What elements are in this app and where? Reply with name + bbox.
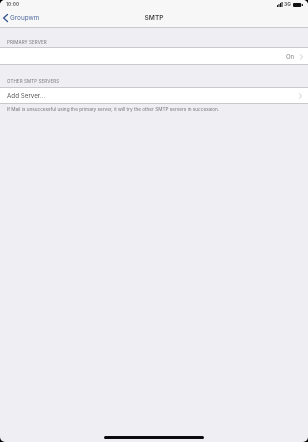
button[interactable]: On (0, 48, 308, 65)
button[interactable]: Groupwm (2, 13, 41, 23)
staticText: SMTP (0, 14, 308, 22)
staticText: If Mail is unsuccessful using the primar… (7, 106, 220, 112)
other: Open (299, 93, 302, 99)
staticText: 10:00 (6, 1, 20, 7)
staticText: OTHER SMTP SERVERS (7, 79, 60, 84)
staticText: On (286, 53, 295, 60)
staticText: 3G (284, 1, 291, 7)
button[interactable]: Add Server... (0, 88, 308, 104)
staticText: Groupwm (10, 14, 40, 22)
other: Open (300, 54, 303, 60)
staticText: Add Server... (7, 92, 46, 100)
staticText: PRIMARY SERVER (7, 40, 47, 45)
